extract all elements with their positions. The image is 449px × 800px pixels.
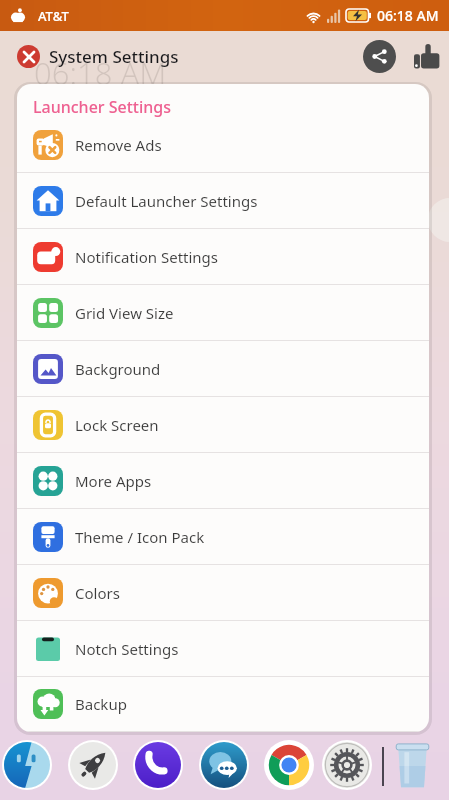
staticText: 06:18 AM [377,6,439,25]
staticText: Colors [75,583,120,603]
staticText: AT&T [38,7,69,25]
button[interactable]: Backup [17,677,429,732]
staticText: System Settings [49,45,179,68]
staticText: Grid View Size [75,303,174,323]
button[interactable] [68,740,118,790]
button[interactable] [363,40,396,73]
staticText: Theme / Icon Pack [75,527,205,547]
button[interactable]: Colors [17,565,429,621]
staticText: Backup [75,694,127,714]
button[interactable] [2,740,52,790]
button[interactable]: Theme / Icon Pack [17,509,429,565]
staticText: Launcher Settings [33,96,172,117]
staticText: 06:18 AM [34,52,167,94]
button[interactable] [322,740,372,790]
button[interactable] [394,743,431,789]
button[interactable]: Notch Settings [17,621,429,677]
button[interactable] [199,740,249,790]
staticText: More Apps [75,471,152,491]
staticText: Notification Settings [75,247,219,267]
staticText: Default Launcher Settings [75,191,258,211]
staticText: Background [75,359,161,379]
button[interactable]: Grid View Size [17,285,429,341]
staticText: Lock Screen [75,415,159,435]
button[interactable]: Notification Settings [17,229,429,285]
button[interactable]: More Apps [17,453,429,509]
button[interactable] [133,740,183,790]
button[interactable]: Lock Screen [17,397,429,453]
staticText: Notch Settings [75,639,179,659]
staticText: Remove Ads [75,135,162,155]
button[interactable]: Remove Ads [17,117,429,173]
button[interactable]: Default Launcher Settings [17,173,429,229]
button[interactable] [17,45,40,68]
button[interactable]: Background [17,341,429,397]
button[interactable] [264,740,314,790]
button[interactable] [412,41,442,71]
